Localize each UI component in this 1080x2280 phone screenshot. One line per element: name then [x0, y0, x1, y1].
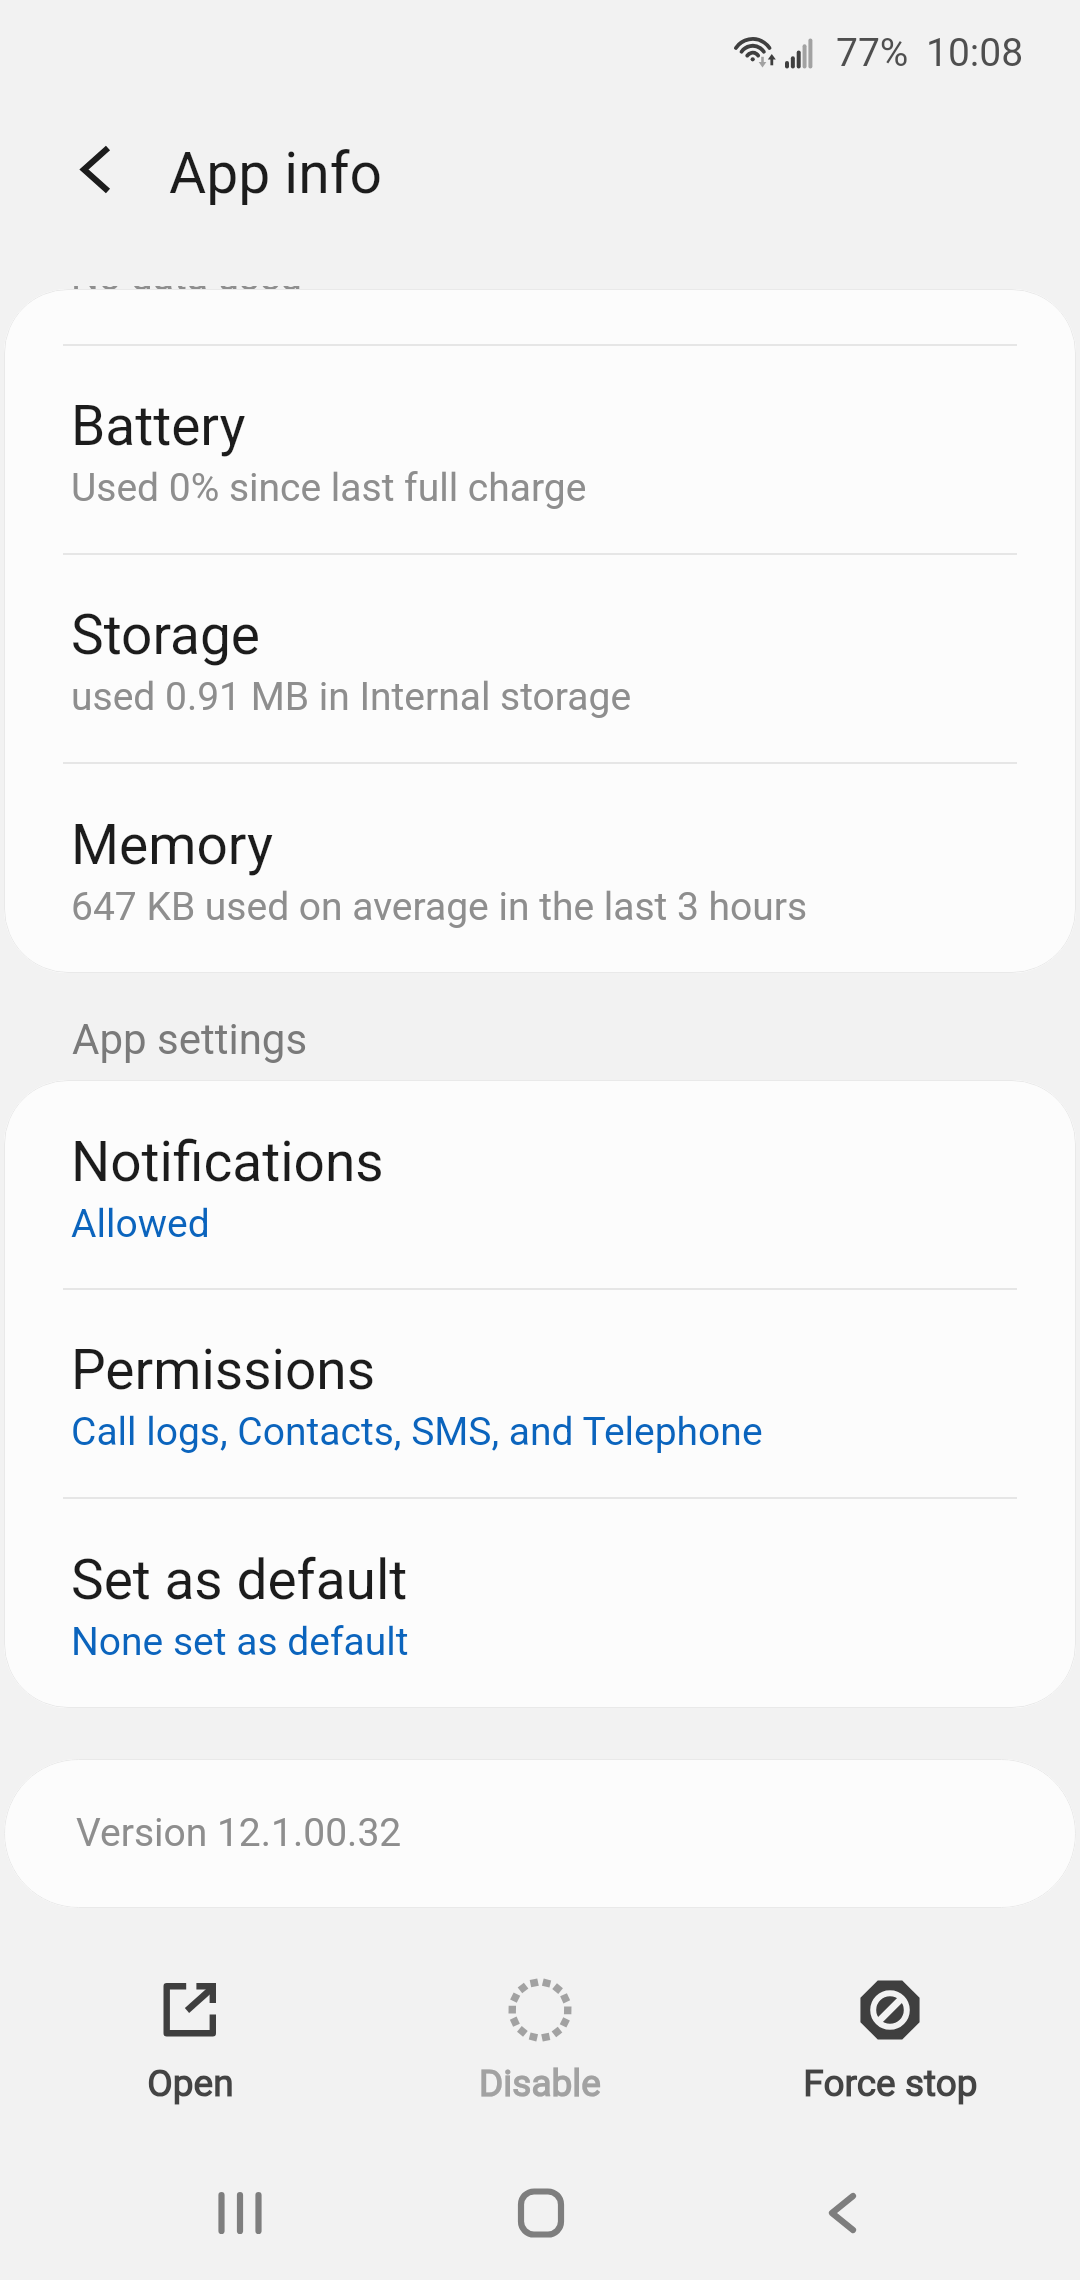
staticText: None set as default	[71, 1619, 409, 1665]
staticText: Open	[147, 2062, 234, 2105]
button[interactable]: Permissions	[4, 1288, 1076, 1497]
staticText: Allowed	[71, 1201, 210, 1247]
staticText: App info	[169, 140, 382, 207]
staticText: Storage	[71, 603, 261, 667]
staticText: 77%	[836, 30, 909, 76]
staticText: Battery	[71, 394, 246, 458]
staticText: Permissions	[71, 1338, 376, 1402]
button[interactable]: Storage	[4, 553, 1076, 762]
button[interactable]: Navigate up	[44, 119, 144, 219]
button[interactable]: Notifications	[4, 1080, 1076, 1288]
button[interactable]: Home	[389, 2145, 690, 2280]
button[interactable]: Open	[15, 1961, 365, 2105]
button[interactable]: Battery	[4, 344, 1076, 553]
button[interactable]: Memory	[4, 762, 1076, 973]
button[interactable]: Disable	[365, 1961, 715, 2105]
staticText: 647 KB used on average in the last 3 hou…	[71, 884, 808, 930]
button[interactable]: Set as default	[4, 1497, 1076, 1708]
staticText: App settings	[72, 1015, 308, 1064]
staticText: Force stop	[803, 2062, 978, 2105]
staticText: Notifications	[71, 1130, 384, 1194]
staticText: Disable	[479, 2062, 601, 2105]
staticText: Call logs, Contacts, SMS, and Telephone	[71, 1409, 763, 1455]
staticText: used 0.91 MB in Internal storage	[71, 674, 632, 720]
staticText: 10:08	[926, 30, 1024, 76]
button[interactable]: Force stop	[715, 1961, 1065, 2105]
staticText: Set as default	[71, 1548, 408, 1612]
staticText: No data used	[71, 254, 302, 300]
staticText: Memory	[71, 813, 273, 877]
button[interactable]: Version 12.1.00.32	[4, 1759, 1076, 1908]
staticText: Version 12.1.00.32	[76, 1810, 402, 1856]
button[interactable]: Recent apps	[89, 2145, 389, 2280]
staticText: Used 0% since last full charge	[71, 465, 587, 511]
button[interactable]: Back	[690, 2145, 991, 2280]
